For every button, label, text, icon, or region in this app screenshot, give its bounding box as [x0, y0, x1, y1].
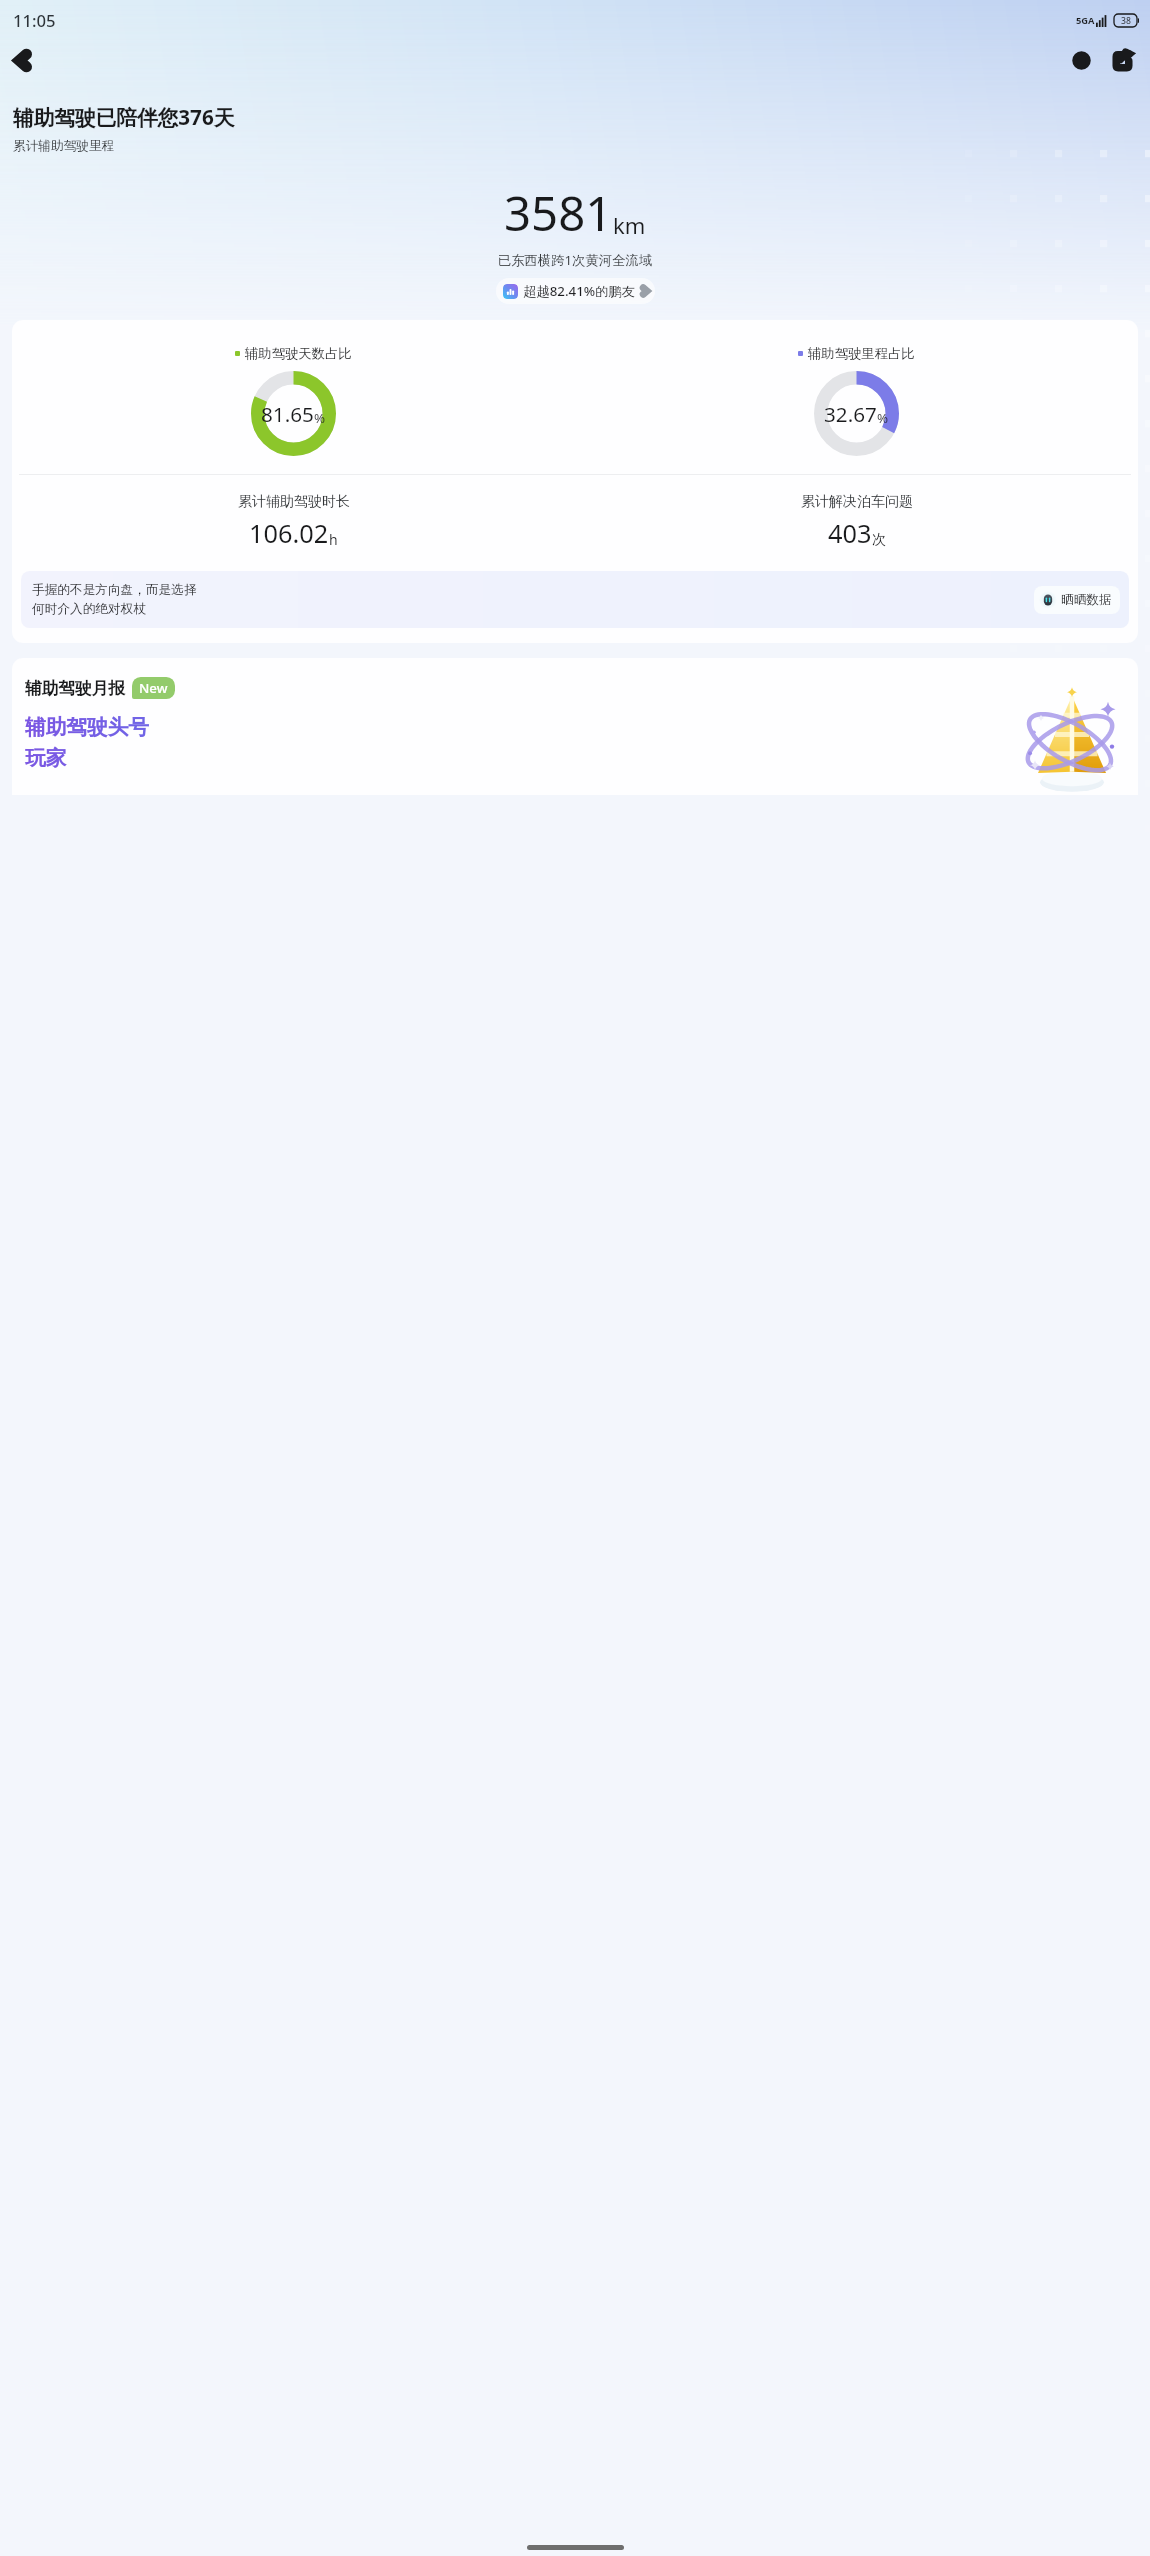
- staticText: 手握的不是方向盘，而是选择: [32, 582, 197, 598]
- staticText: 3581: [504, 180, 613, 244]
- staticText: New: [139, 679, 168, 697]
- staticText: 106.02: [249, 516, 329, 551]
- staticText: 81.65: [261, 400, 314, 428]
- staticText: 累计辅助驾驶里程: [13, 138, 115, 154]
- button[interactable]: Back: [7, 44, 39, 76]
- staticText: 累计解决泊车问题: [801, 493, 913, 511]
- button[interactable]: 晒晒数据: [1034, 586, 1120, 614]
- staticText: 403: [828, 516, 872, 551]
- staticText: 辅助驾驶已陪伴您376天: [13, 103, 235, 131]
- staticText: 次: [872, 531, 886, 549]
- staticText: 辅助驾驶里程占比: [808, 345, 915, 362]
- button[interactable]: Share: [1106, 44, 1138, 76]
- staticText: 辅助驾驶头号: [25, 714, 149, 740]
- button[interactable]: 超越82.41%的鹏友: [496, 278, 655, 304]
- staticText: 32.67: [824, 400, 877, 428]
- button[interactable]: 辅助驾驶月报: [12, 658, 1138, 795]
- staticText: km: [613, 210, 646, 240]
- staticText: 累计辅助驾驶时长: [238, 493, 350, 511]
- staticText: 何时介入的绝对权杖: [32, 601, 146, 617]
- staticText: 超越82.41%的鹏友: [523, 282, 636, 300]
- staticText: 11:05: [13, 9, 56, 32]
- button[interactable]: Info: [1065, 44, 1097, 76]
- staticText: 辅助驾驶月报: [25, 678, 125, 699]
- staticText: 玩家: [25, 745, 67, 771]
- staticText: 38: [1121, 15, 1131, 27]
- staticText: 已东西横跨1次黄河全流域: [0, 251, 1150, 269]
- staticText: 晒晒数据: [1061, 592, 1112, 608]
- staticText: h: [329, 530, 338, 549]
- staticText: 辅助驾驶天数占比: [245, 345, 352, 362]
- staticText: %: [877, 409, 889, 427]
- staticText: 5GA: [1076, 14, 1095, 27]
- staticText: %: [314, 409, 326, 427]
